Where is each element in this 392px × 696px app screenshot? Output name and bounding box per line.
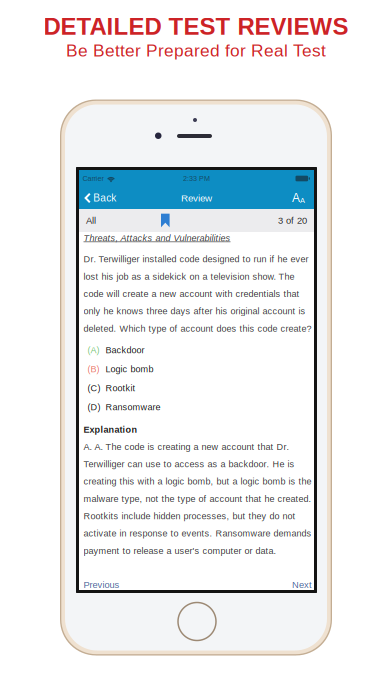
button[interactable]: (B) — [83, 360, 308, 379]
staticText: Logic bomb — [105, 364, 153, 374]
staticText: Next — [292, 580, 312, 590]
staticText: A. A. The code is creating a new account… — [83, 442, 311, 556]
staticText: Back — [93, 192, 116, 204]
button[interactable]: All — [79, 209, 103, 232]
staticText: Rootkit — [105, 383, 135, 393]
staticText: Review — [181, 192, 212, 203]
staticText: Explanation — [83, 425, 137, 435]
button[interactable]: Next — [292, 580, 312, 590]
staticText: Dr. Terwilliger installed code designed … — [83, 254, 311, 333]
button[interactable]: Back — [79, 187, 122, 209]
button[interactable]: (C) — [83, 379, 308, 398]
button[interactable]: Bookmark — [161, 214, 170, 227]
staticText: Ransomware — [105, 402, 160, 412]
staticText: Carrier — [82, 174, 103, 182]
staticText: (C) — [87, 383, 100, 393]
staticText: DETAILED TEST REVIEWS — [43, 13, 348, 40]
staticText: A — [292, 191, 300, 204]
button[interactable]: Previous — [83, 580, 119, 590]
staticText: 3 of 20 — [278, 215, 307, 226]
staticText: A — [300, 196, 305, 204]
button[interactable]: (A) — [83, 341, 308, 360]
button[interactable]: (D) — [83, 398, 308, 417]
staticText: 2:33 PM — [183, 174, 210, 182]
staticText: Be Better Prepared for Real Test — [66, 41, 326, 60]
staticText: (B) — [87, 364, 99, 374]
staticText: (A) — [87, 345, 99, 355]
staticText: Threats, Attacks and Vulnerabilities — [83, 233, 230, 243]
staticText: Previous — [83, 580, 119, 590]
staticText: (D) — [87, 402, 100, 412]
staticText: Backdoor — [105, 345, 144, 355]
button[interactable]: Text size — [290, 187, 314, 209]
staticText: All — [86, 215, 96, 226]
